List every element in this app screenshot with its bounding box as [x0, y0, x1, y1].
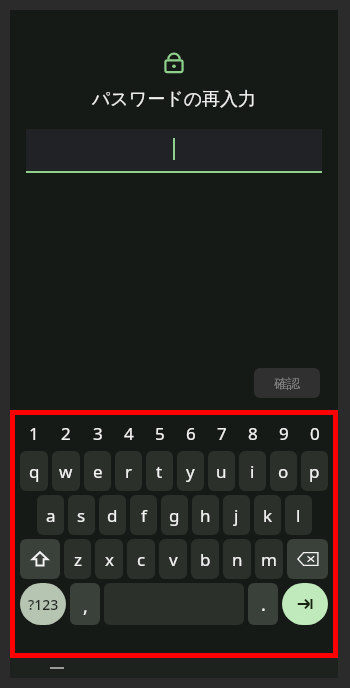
staticText: h — [200, 504, 211, 527]
staticText: 6 — [186, 422, 196, 445]
staticText: o — [278, 460, 289, 483]
button[interactable]: t — [146, 451, 173, 491]
button[interactable]: 確認 — [254, 368, 320, 398]
staticText: . — [261, 592, 266, 617]
staticText: u — [216, 460, 227, 483]
staticText: ?123 — [28, 595, 59, 614]
staticText: x — [105, 548, 114, 571]
button[interactable]: r — [115, 451, 142, 491]
button[interactable]: c — [127, 539, 155, 579]
button[interactable]: 4 — [113, 418, 144, 448]
button[interactable]: d — [99, 495, 126, 535]
staticText: l — [296, 504, 301, 527]
staticText: y — [186, 460, 195, 483]
staticText: 5 — [155, 422, 165, 445]
button[interactable]: 6 — [175, 418, 206, 448]
staticText: m — [261, 548, 277, 571]
staticText: n — [232, 548, 243, 571]
button[interactable]: o — [270, 451, 297, 491]
button[interactable]: a — [37, 495, 64, 535]
button[interactable]: 1 — [18, 418, 50, 448]
staticText: 2 — [61, 422, 71, 445]
button[interactable]: g — [161, 495, 188, 535]
staticText: f — [141, 504, 147, 527]
staticText: k — [263, 504, 273, 527]
button[interactable]: l — [285, 495, 312, 535]
staticText: t — [156, 460, 163, 483]
button[interactable]: j — [223, 495, 250, 535]
button[interactable]: . — [248, 583, 278, 625]
staticText: s — [77, 504, 86, 527]
button[interactable]: Enter — [282, 583, 328, 625]
button[interactable] — [26, 129, 322, 173]
button[interactable]: k — [254, 495, 281, 535]
staticText: 確認 — [274, 375, 300, 391]
button[interactable]: Backspace — [287, 539, 328, 579]
button[interactable]: 0 — [299, 418, 330, 448]
staticText: e — [93, 460, 103, 483]
button[interactable]: ?123 — [20, 583, 66, 625]
button[interactable]: i — [239, 451, 266, 491]
button[interactable]: p — [301, 451, 328, 491]
button[interactable]: v — [159, 539, 187, 579]
staticText: d — [107, 504, 118, 527]
button[interactable]: u — [208, 451, 235, 491]
button[interactable]: 9 — [268, 418, 299, 448]
staticText: c — [137, 548, 146, 571]
button[interactable]: h — [192, 495, 219, 535]
button[interactable]: y — [177, 451, 204, 491]
staticText: 7 — [217, 422, 227, 445]
button[interactable]: 5 — [144, 418, 175, 448]
staticText: 8 — [248, 422, 258, 445]
button[interactable]: s — [68, 495, 95, 535]
button[interactable]: n — [223, 539, 251, 579]
button[interactable]: 7 — [206, 418, 237, 448]
button[interactable]: f — [130, 495, 157, 535]
staticText: j — [234, 504, 239, 527]
staticText: q — [29, 460, 40, 483]
staticText: 0 — [310, 422, 320, 445]
button[interactable]: q — [20, 451, 48, 491]
staticText: パスワードの再入力 — [10, 88, 338, 111]
staticText: z — [74, 548, 82, 571]
button[interactable]: e — [84, 451, 111, 491]
staticText: v — [169, 548, 178, 571]
button[interactable]: m — [255, 539, 283, 579]
button[interactable]: 2 — [50, 418, 82, 448]
staticText: b — [200, 548, 211, 571]
button[interactable]: 8 — [237, 418, 268, 448]
button[interactable]: x — [95, 539, 123, 579]
staticText: r — [125, 460, 133, 483]
button[interactable]: Shift — [20, 539, 60, 579]
staticText: p — [309, 460, 320, 483]
staticText: g — [169, 504, 180, 527]
button[interactable]: 3 — [82, 418, 113, 448]
button[interactable]: b — [191, 539, 219, 579]
staticText: w — [59, 460, 73, 483]
staticText: a — [46, 504, 56, 527]
button[interactable]: z — [64, 539, 91, 579]
button[interactable]: w — [52, 451, 80, 491]
staticText: i — [250, 460, 255, 483]
staticText: , — [83, 594, 88, 619]
staticText: 3 — [93, 422, 103, 445]
button[interactable]: , — [70, 583, 100, 625]
staticText: 4 — [124, 422, 134, 445]
staticText: 1 — [29, 422, 39, 445]
staticText: 9 — [279, 422, 289, 445]
